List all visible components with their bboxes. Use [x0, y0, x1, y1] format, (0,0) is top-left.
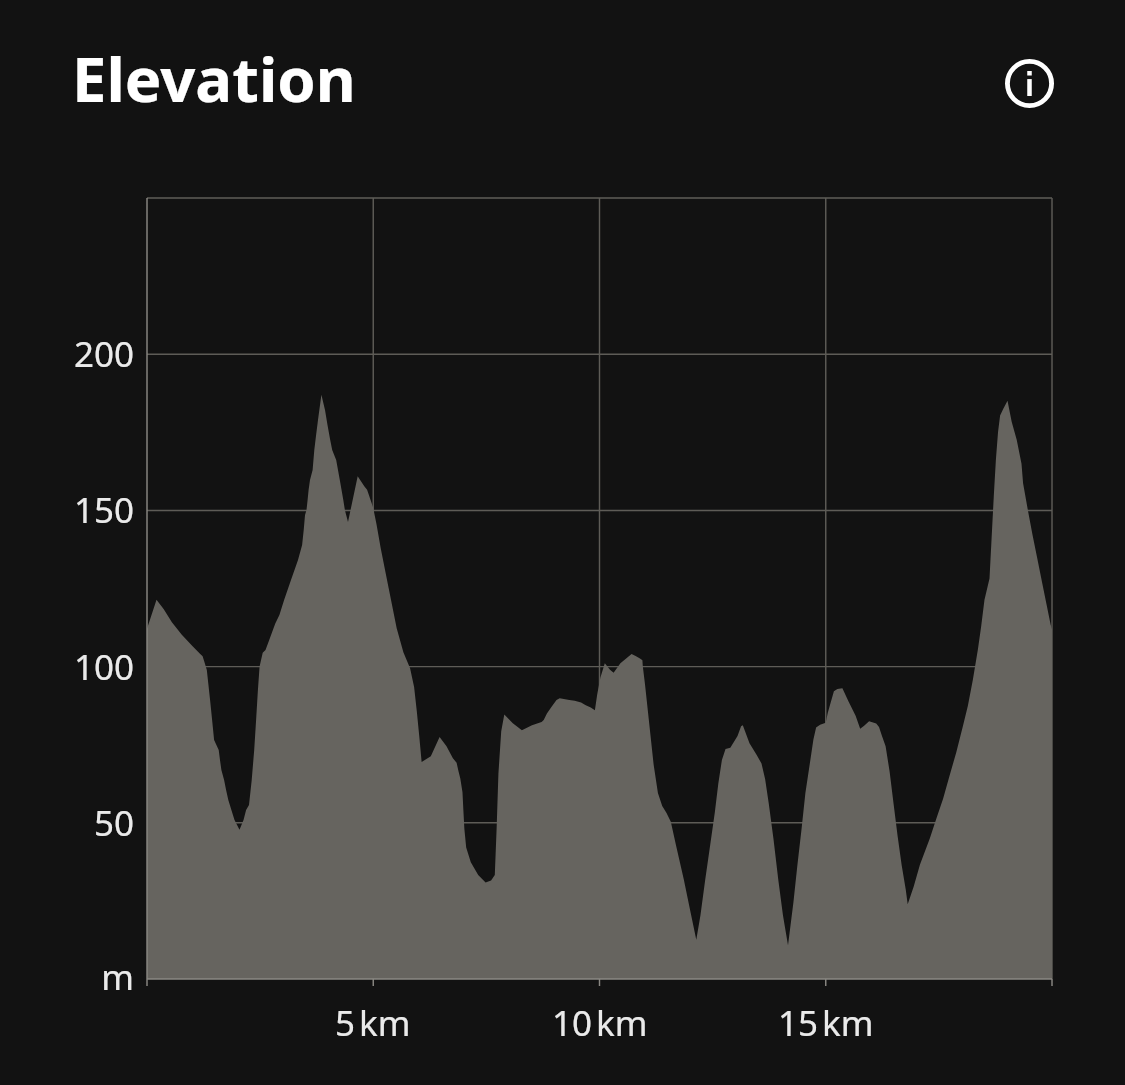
staticText: m: [101, 953, 134, 1001]
staticText: 50: [93, 799, 134, 847]
staticText: km: [822, 999, 874, 1047]
staticText: Elevation: [72, 36, 356, 120]
button[interactable]: Info: [983, 37, 1075, 129]
staticText: km: [596, 999, 648, 1047]
staticText: 10: [552, 999, 593, 1047]
staticText: 150: [73, 486, 134, 534]
staticText: 100: [73, 643, 134, 691]
staticText: 200: [73, 330, 134, 378]
staticText: 5: [335, 999, 356, 1047]
staticText: km: [359, 999, 411, 1047]
staticText: 15: [778, 999, 819, 1047]
